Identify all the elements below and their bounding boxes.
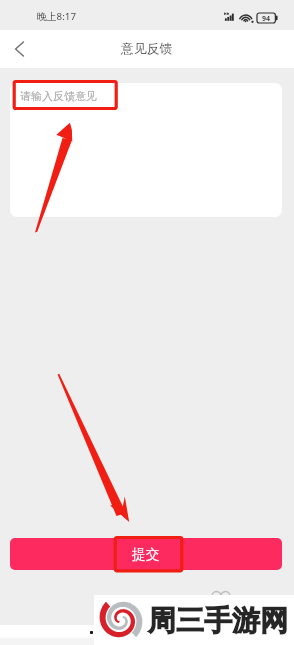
staticText: 94: [262, 14, 271, 24]
staticText: 晚上8:17: [37, 10, 77, 23]
staticText: 周三手游网: [148, 603, 288, 638]
staticText: 请输入反馈意见: [20, 89, 97, 103]
staticText: 意见反馈: [121, 41, 173, 57]
staticText: 提交: [132, 546, 160, 563]
button[interactable]: 请输入反馈意见: [10, 83, 282, 217]
button[interactable]: 返回: [0, 30, 38, 68]
button[interactable]: 提交: [10, 538, 282, 570]
